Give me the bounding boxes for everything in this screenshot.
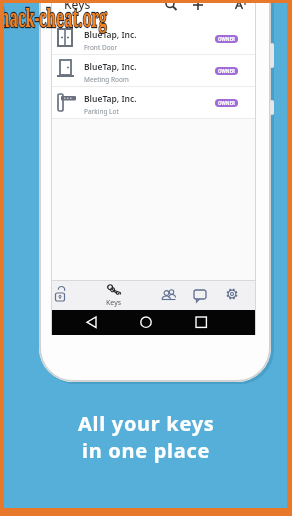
staticText: hack-cheat.org [0, 0, 107, 34]
button[interactable]: BlueTap, Inc. [52, 23, 255, 55]
staticText: Keys [64, 0, 91, 12]
staticText: OWNER [218, 68, 235, 74]
button[interactable] [217, 281, 247, 310]
staticText: BlueTap, Inc. [84, 29, 137, 41]
staticText: OWNER [218, 36, 235, 42]
button[interactable] [185, 281, 215, 310]
button[interactable]: Keys [99, 281, 129, 310]
staticText: BlueTap, Inc. [84, 93, 137, 105]
staticText: Meeting Room [84, 75, 129, 84]
staticText: in one place [82, 437, 211, 464]
staticText: Parking Lot [84, 107, 119, 116]
button[interactable] [52, 281, 82, 310]
staticText: BlueTap, Inc. [84, 61, 137, 73]
button[interactable]: BlueTap, Inc. [52, 55, 255, 87]
button[interactable]: BlueTap, Inc. [52, 87, 255, 119]
staticText: Front Door [84, 43, 118, 52]
staticText: hack-cheat.org [0, 0, 107, 34]
staticText: OWNER [218, 100, 235, 106]
button[interactable] [154, 281, 184, 310]
staticText: Keys [106, 298, 122, 308]
staticText: All your keys [78, 410, 215, 437]
